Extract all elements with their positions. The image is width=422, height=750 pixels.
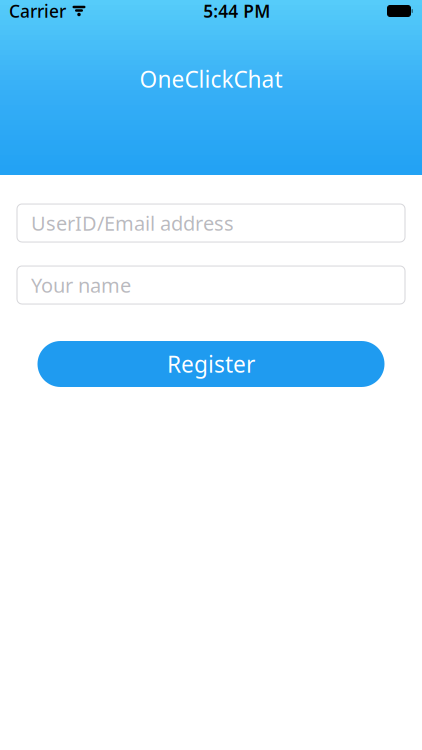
staticText: Register — [167, 349, 255, 379]
staticText: UserID/Email address — [31, 210, 234, 236]
staticText: Carrier — [9, 0, 66, 22]
button[interactable]: Register — [37, 341, 384, 387]
staticText: 5:44 PM — [203, 0, 270, 22]
staticText: OneClickChat — [139, 64, 282, 94]
staticText: Your name — [31, 272, 131, 298]
